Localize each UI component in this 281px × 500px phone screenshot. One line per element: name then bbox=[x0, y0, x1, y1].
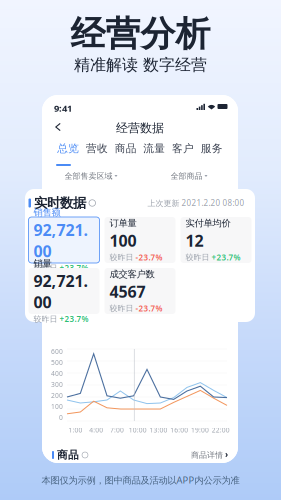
staticText: 19:00 bbox=[191, 426, 209, 434]
staticText: 400 bbox=[51, 369, 63, 378]
staticText: 500 bbox=[51, 358, 63, 367]
staticText: 较昨日 bbox=[109, 303, 133, 313]
button[interactable]: 商品 bbox=[111, 142, 140, 154]
button[interactable]: 总览 bbox=[54, 142, 83, 154]
button[interactable]: 全部售卖区域 bbox=[42, 171, 140, 181]
staticText: 10:00 bbox=[129, 426, 147, 434]
staticText: 商品 bbox=[57, 448, 79, 461]
staticText: 经营数据 bbox=[116, 121, 164, 135]
staticText: 上次更新 2021.2.20 08:00 bbox=[147, 198, 244, 208]
staticText: 22:00 bbox=[212, 426, 230, 434]
staticText: 200 bbox=[51, 391, 63, 400]
staticText: 92,721.00 bbox=[33, 270, 87, 313]
staticText: 600 bbox=[51, 347, 63, 356]
staticText: 300 bbox=[51, 380, 63, 389]
staticText: +23.7% bbox=[211, 252, 240, 263]
staticText: +23.7% bbox=[59, 314, 88, 324]
button[interactable]: 流量 bbox=[140, 142, 169, 154]
staticText: 销量 bbox=[33, 258, 51, 269]
staticText: 实时数据 bbox=[34, 195, 86, 211]
staticText: 订单量 bbox=[109, 217, 136, 229]
staticText: +23.7% bbox=[59, 263, 88, 273]
staticText: 较昨日 bbox=[33, 263, 57, 273]
staticText: 全部售卖区域 bbox=[64, 171, 112, 181]
staticText: 全部商品 bbox=[170, 171, 202, 181]
staticText: 本图仅为示例，图中商品及活动以APP内公示为准 bbox=[41, 474, 239, 486]
staticText: 13:00 bbox=[149, 426, 167, 434]
staticText: -23.7% bbox=[135, 252, 162, 263]
staticText: 0 bbox=[59, 413, 63, 422]
staticText: 精准解读 数字经营 bbox=[74, 55, 207, 75]
staticText: 较昨日 bbox=[185, 252, 209, 262]
staticText: 服务 bbox=[201, 142, 223, 154]
staticText: 92,721.00 bbox=[33, 219, 87, 262]
staticText: 较昨日 bbox=[109, 252, 133, 262]
staticText: 营收 bbox=[86, 142, 108, 154]
staticText: 客户 bbox=[172, 142, 194, 154]
button[interactable]: 客户 bbox=[169, 142, 197, 154]
staticText: 100 bbox=[51, 402, 63, 411]
staticText: 流量 bbox=[143, 142, 165, 154]
staticText: 12 bbox=[185, 230, 203, 251]
staticText: -23.7% bbox=[135, 303, 162, 314]
button[interactable]: 营收 bbox=[83, 142, 111, 154]
staticText: 较昨日 bbox=[33, 314, 57, 324]
button[interactable]: 商品详情 bbox=[191, 450, 228, 460]
staticText: 7:00 bbox=[110, 426, 124, 434]
staticText: 4567 bbox=[109, 281, 145, 302]
button[interactable]: 全部商品 bbox=[140, 171, 238, 181]
staticText: 商品 bbox=[115, 142, 137, 154]
staticText: 实付单均价 bbox=[185, 217, 230, 229]
staticText: 销售额 bbox=[33, 207, 60, 218]
staticText: 经营分析 bbox=[70, 13, 210, 55]
staticText: 总览 bbox=[57, 142, 79, 154]
staticText: 商品详情 bbox=[191, 450, 223, 460]
button[interactable]: 服务 bbox=[197, 142, 226, 154]
staticText: 1:00 bbox=[68, 426, 82, 434]
staticText: 4:00 bbox=[89, 426, 103, 434]
staticText: 成交客户数 bbox=[109, 268, 154, 280]
staticText: 9:41 bbox=[54, 102, 72, 114]
button[interactable]: 返回 bbox=[48, 117, 68, 137]
staticText: 16:00 bbox=[170, 426, 188, 434]
staticText: 100 bbox=[109, 230, 136, 251]
